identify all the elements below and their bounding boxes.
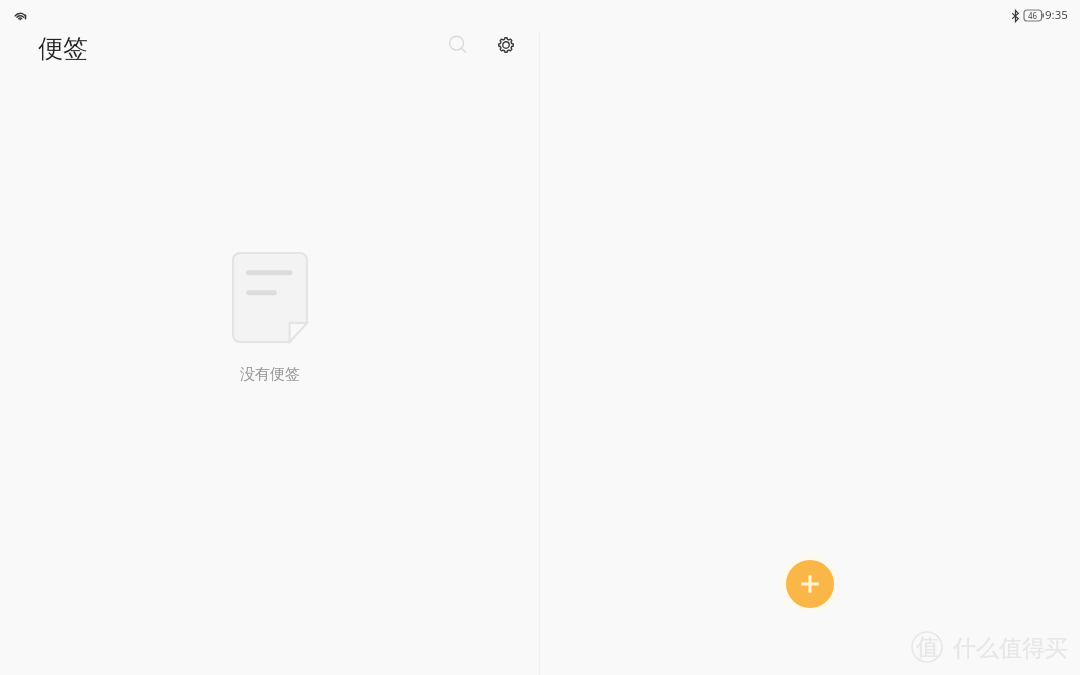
staticText: 什么值得买 bbox=[953, 634, 1068, 663]
staticText: 9:35 bbox=[1045, 7, 1068, 23]
button[interactable]: Add note bbox=[786, 560, 834, 608]
staticText: 没有便签 bbox=[240, 365, 300, 384]
button[interactable]: Settings bbox=[488, 27, 524, 63]
staticText: 46 bbox=[1028, 10, 1038, 21]
staticText: 便签 bbox=[38, 33, 88, 64]
button[interactable]: Search bbox=[440, 27, 476, 63]
staticText: 值 bbox=[916, 633, 939, 662]
